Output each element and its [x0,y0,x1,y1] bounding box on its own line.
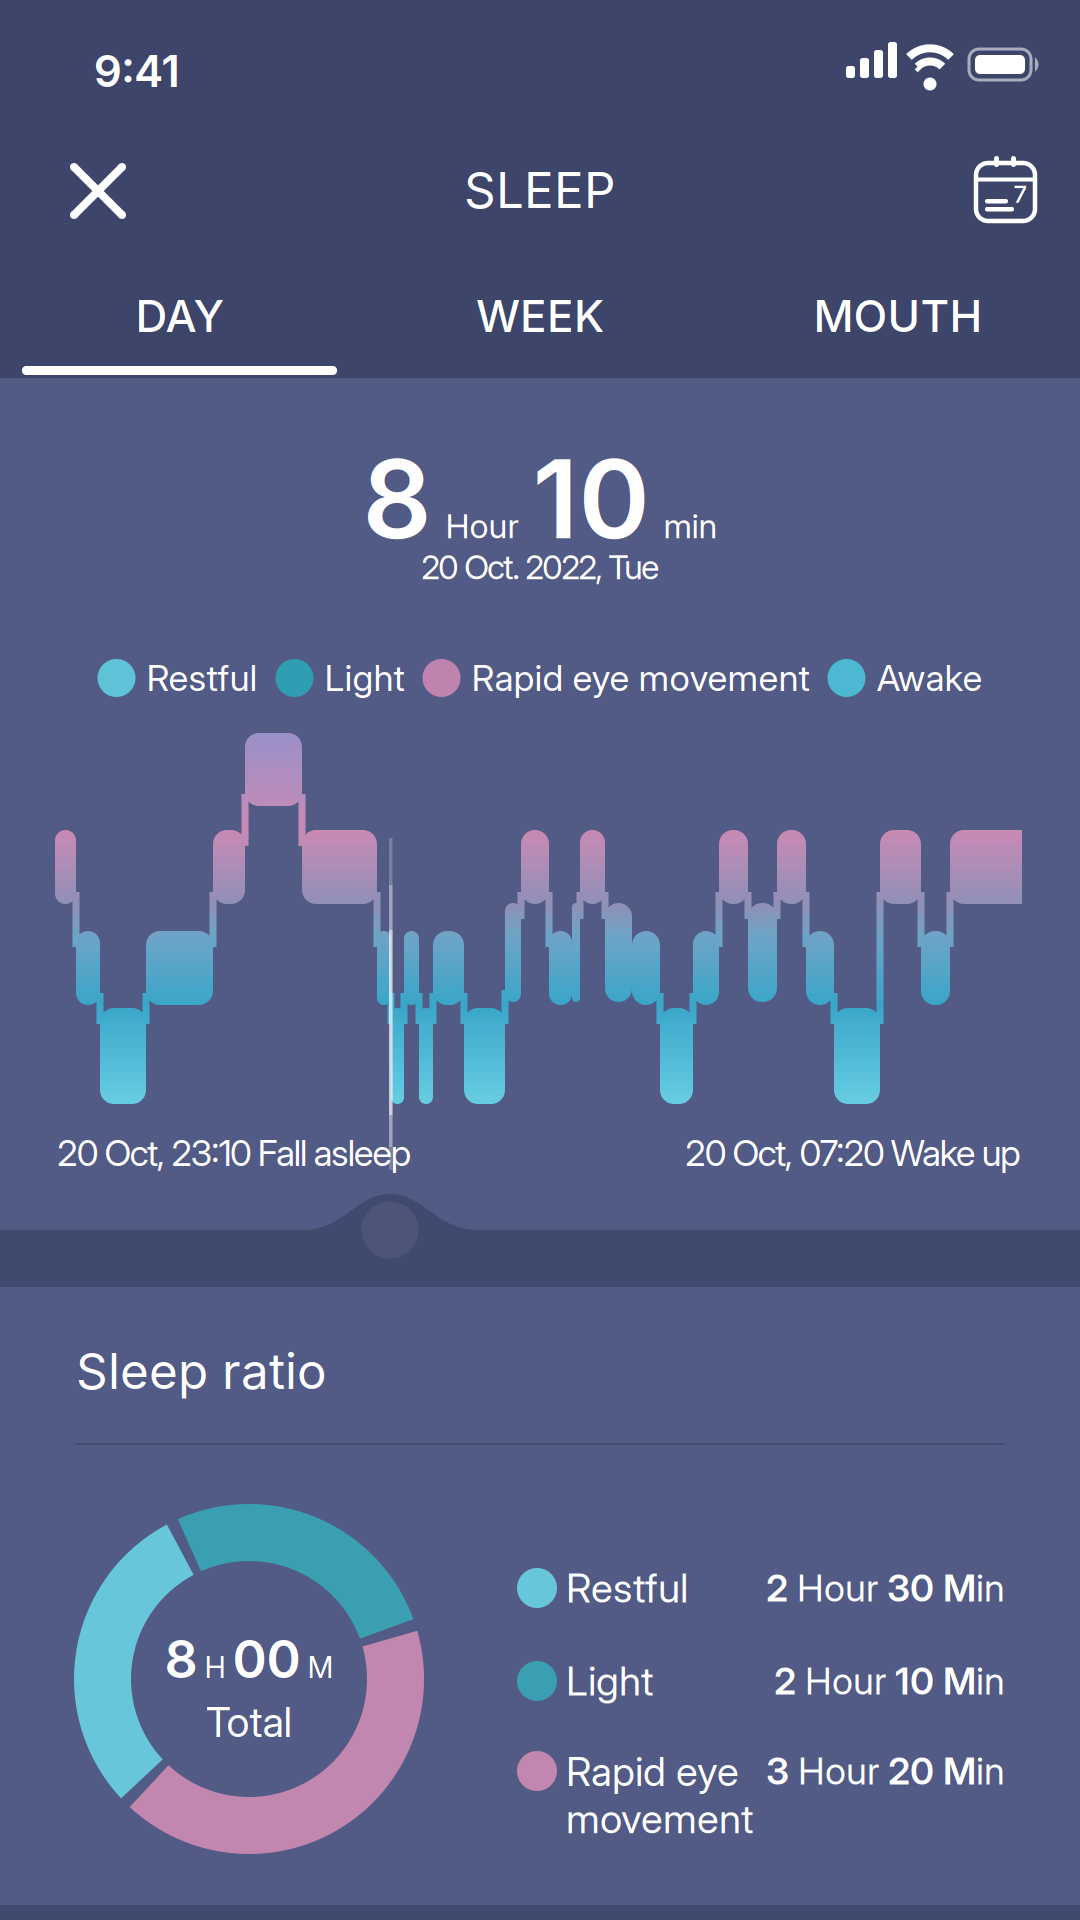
staticText: 9:41 [94,45,180,97]
staticText: 10 [532,435,649,563]
staticText: 8 [362,435,431,563]
staticText: in [976,1749,1005,1793]
staticText: Light [324,657,404,699]
staticText: in [976,1659,1005,1703]
staticText: M [943,1659,976,1703]
button[interactable]: WEEK [380,281,700,351]
staticText: Restful [566,1564,688,1612]
staticText: Light [566,1657,654,1705]
staticText: MOUTH [813,290,982,342]
staticText: Hour [797,1566,878,1610]
staticText: 20 Oct, 23:10 Fall asleep [57,1132,412,1174]
staticText: 10 [895,1659,934,1703]
staticText: H [204,1650,225,1684]
staticText: Rapid eye movement [566,1748,754,1842]
staticText: Awake [876,657,982,699]
button[interactable]: DAY [20,281,340,351]
staticText: WEEK [476,290,604,342]
staticText: 3 [766,1749,789,1793]
staticText: Hour [798,1749,879,1793]
staticText: 00 [232,1628,300,1690]
staticText: Rapid eye movement [471,657,809,699]
staticText: 8 [164,1628,197,1690]
staticText: 30 [887,1566,934,1610]
staticText: M [943,1566,976,1610]
staticText: Total [205,1698,292,1746]
button[interactable]: Close [50,143,146,239]
button[interactable]: Calendar [957,143,1053,239]
staticText: M [307,1650,333,1684]
button[interactable]: MOUTH [738,281,1058,351]
staticText: 2 [774,1659,796,1703]
staticText: Sleep ratio [76,1342,327,1400]
staticText: min [663,506,717,546]
staticText: Hour [445,506,518,546]
staticText: DAY [135,290,224,342]
staticText: 2 [766,1566,788,1610]
staticText: 20 [888,1749,934,1793]
staticText: Hour [805,1659,886,1703]
staticText: 7 [1013,180,1026,208]
staticText: M [943,1749,976,1793]
staticText: Restful [146,657,257,699]
staticText: 20 Oct. 2022, Tue [421,547,659,587]
button[interactable]: Chart position [361,1201,418,1258]
staticText: in [976,1566,1005,1610]
staticText: 20 Oct, 07:20 Wake up [685,1132,1021,1174]
staticText: SLEEP [464,161,616,219]
